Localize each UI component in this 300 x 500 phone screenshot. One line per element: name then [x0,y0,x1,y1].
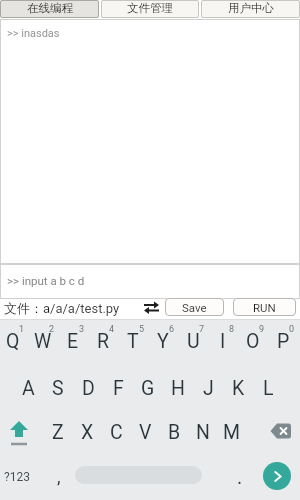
button[interactable]: , [35,460,83,492]
staticText: P [277,330,290,353]
button[interactable]: . [216,460,264,492]
button[interactable]: 在线编程 [0,0,99,18]
staticText: L [263,377,274,400]
button[interactable]: A [4,372,52,404]
staticText: X [81,421,94,444]
staticText: 0 [289,324,295,335]
button[interactable]: 5 [118,313,166,345]
button[interactable]: 0 [268,313,300,345]
staticText: E [67,330,79,353]
button[interactable]: L [244,372,292,404]
staticText: U [187,330,200,353]
button[interactable] [142,296,162,316]
staticText: 文件：a/a/a/test.py [4,300,120,316]
staticText: RUN [253,301,276,314]
staticText: H [171,377,185,400]
staticText: G [141,377,155,400]
button[interactable]: B [150,416,198,448]
button[interactable]: H [154,372,202,404]
staticText: 用户中心 [228,1,274,15]
staticText: 5 [139,324,145,335]
button[interactable]: V [121,416,169,448]
staticText: ?123 [4,470,30,484]
staticText: 2 [49,324,55,335]
staticText: 8 [229,324,235,335]
button[interactable]: I [199,325,247,357]
staticText: 4 [109,324,115,335]
button[interactable]: F [94,372,142,404]
button[interactable]: G [124,372,172,404]
staticText: >> inasdas [7,27,60,40]
button[interactable]: Y [139,325,187,357]
staticText: D [82,377,95,400]
staticText: 文件管理 [127,1,173,15]
staticText: O [246,330,260,353]
button[interactable] [263,462,291,490]
staticText: 在线编程 [27,1,73,15]
staticText: V [139,421,152,444]
button[interactable]: 1 [0,313,46,345]
button[interactable] [8,419,30,447]
staticText: 3 [79,324,85,335]
staticText: I [220,330,226,353]
staticText: B [168,421,181,444]
button[interactable]: 4 [88,313,136,345]
button[interactable]: P [259,325,300,357]
staticText: Save [182,301,207,314]
staticText: Z [52,421,64,444]
button[interactable]: 8 [208,313,256,345]
button[interactable]: 6 [148,313,196,345]
staticText: A [22,377,35,400]
button[interactable]: E [49,325,97,357]
staticText: C [110,421,123,444]
button[interactable] [0,264,300,299]
staticText: >> input a b c d [7,274,85,287]
button[interactable]: W [19,325,67,357]
button[interactable]: Save [165,298,224,316]
staticText: J [203,377,214,400]
staticText: N [196,421,210,444]
staticText: 6 [169,324,175,335]
button[interactable]: 文件管理 [101,0,199,18]
button[interactable]: 7 [178,313,226,345]
button[interactable]: X [63,416,111,448]
button[interactable]: 9 [238,313,286,345]
staticText: W [34,330,52,353]
staticText: Y [157,330,169,353]
staticText: R [97,330,110,353]
button[interactable]: U [169,325,217,357]
staticText: Q [6,330,20,353]
button[interactable]: D [64,372,112,404]
staticText: 1 [19,324,25,335]
staticText: K [232,377,245,400]
button[interactable]: K [214,372,262,404]
button[interactable]: 用户中心 [201,0,300,18]
staticText: T [127,330,139,353]
button[interactable]: N [179,416,227,448]
staticText: 7 [199,324,205,335]
button[interactable] [0,19,300,264]
button[interactable]: RUN [233,298,296,316]
button[interactable]: C [92,416,140,448]
button[interactable]: O [229,325,277,357]
staticText: M [223,421,241,444]
button[interactable] [270,423,292,440]
button[interactable]: M [208,416,256,448]
staticText: S [52,377,64,400]
button[interactable]: Q [0,325,37,357]
button[interactable]: ?123 [0,461,41,493]
button[interactable]: S [34,372,82,404]
button[interactable]: 3 [58,313,106,345]
staticText: 9 [259,324,265,335]
button[interactable]: Z [34,416,82,448]
button[interactable]: T [109,325,157,357]
staticText: F [113,377,124,400]
button[interactable]: R [79,325,127,357]
button[interactable]: J [184,372,232,404]
staticText: , [57,466,61,487]
button[interactable]: 2 [28,313,76,345]
staticText: . [237,465,243,488]
